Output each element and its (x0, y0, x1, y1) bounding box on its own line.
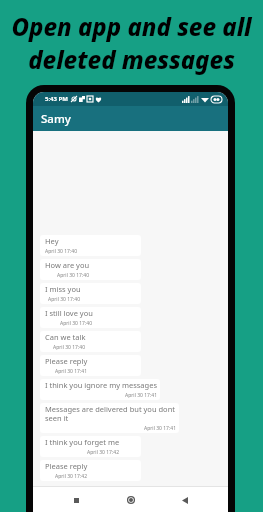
button[interactable]: I still love you (40, 307, 141, 328)
staticText: Samy (41, 111, 71, 127)
button[interactable]: Samy (33, 106, 228, 131)
staticText: Can we talk (45, 332, 86, 342)
staticText: April 30 17:40 (57, 272, 90, 279)
staticText: April 30 17:41 (55, 368, 88, 375)
staticText: April 30 17:42 (87, 449, 120, 456)
staticText: I think you ignore my messages (45, 380, 158, 390)
staticText: 5:43 PM (45, 95, 68, 103)
button[interactable]: Hey (40, 235, 141, 256)
button[interactable]: Home (119, 488, 143, 512)
staticText: April 30 17:40 (60, 320, 93, 327)
button[interactable]: I miss you (40, 283, 141, 304)
button[interactable]: I think you forget me (40, 436, 141, 457)
staticText: I think you forget me (45, 437, 120, 447)
staticText: April 30 17:41 (125, 392, 158, 399)
staticText: Messages are delivered but you dont seen… (45, 404, 177, 423)
staticText: deleted messages (28, 43, 235, 76)
staticText: April 30 17:40 (45, 248, 78, 255)
button[interactable]: Can we talk (40, 331, 141, 352)
staticText: Please reply (45, 356, 88, 366)
staticText: Hey (45, 236, 59, 246)
button[interactable]: I think you ignore my messages (40, 379, 160, 400)
button[interactable]: Please reply (40, 460, 141, 481)
staticText: Open app and see all (11, 10, 252, 43)
staticText: April 30 17:41 (144, 425, 177, 432)
staticText: I still love you (45, 308, 93, 318)
staticText: I miss you (45, 284, 81, 294)
button[interactable]: Back (173, 488, 197, 512)
button[interactable]: Messages are delivered but you dont seen… (40, 403, 179, 433)
button[interactable]: Recents (64, 488, 88, 512)
staticText: April 30 17:42 (55, 473, 88, 480)
button[interactable]: Please reply (40, 355, 141, 376)
button[interactable]: How are you (40, 259, 141, 280)
staticText: Please reply (45, 461, 88, 471)
staticText: April 30 17:40 (53, 344, 86, 351)
staticText: April 30 17:40 (48, 296, 81, 303)
staticText: How are you (45, 260, 90, 270)
